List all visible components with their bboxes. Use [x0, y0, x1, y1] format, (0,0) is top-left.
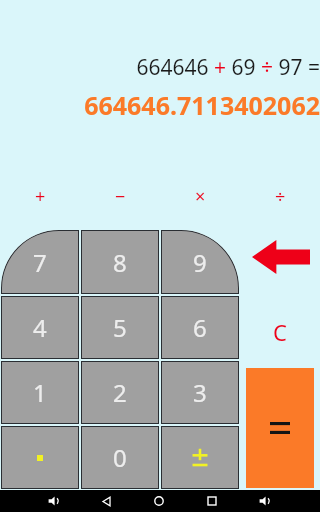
button[interactable]: Home — [146, 490, 172, 512]
staticText: C — [273, 317, 287, 347]
button[interactable]: 2 — [81, 361, 159, 424]
button[interactable]: Volume — [252, 490, 278, 512]
staticText: 664646 + 69 ÷ 97 = — [131, 53, 320, 82]
staticText: 2 — [113, 376, 127, 409]
button[interactable]: 5 — [81, 296, 159, 359]
button[interactable]: Back — [93, 490, 119, 512]
button[interactable]: 8 — [81, 230, 159, 294]
staticText: 6 — [193, 311, 207, 344]
staticText: − — [115, 184, 126, 209]
staticText: ÷ — [275, 184, 286, 209]
button[interactable]: Volume — [41, 490, 67, 512]
button[interactable]: × — [160, 180, 240, 212]
button[interactable] — [1, 426, 79, 489]
button[interactable]: Recents — [199, 490, 225, 512]
button[interactable]: + — [0, 180, 80, 212]
staticText: 5 — [113, 311, 127, 344]
button[interactable]: C — [255, 310, 305, 354]
button[interactable]: 3 — [161, 361, 239, 424]
staticText: 1 — [33, 376, 47, 409]
button[interactable] — [161, 426, 239, 489]
staticText: + — [35, 184, 46, 209]
button[interactable]: 0 — [81, 426, 159, 489]
staticText: 3 — [193, 376, 207, 409]
staticText: 7 — [33, 246, 47, 279]
button[interactable]: 1 — [1, 361, 79, 424]
button[interactable]: 4 — [1, 296, 79, 359]
button[interactable]: − — [80, 180, 160, 212]
staticText: 4 — [33, 311, 47, 344]
button[interactable] — [246, 368, 314, 488]
staticText: × — [195, 184, 206, 209]
staticText: 0 — [113, 441, 127, 474]
button[interactable]: ÷ — [240, 180, 320, 212]
staticText: 664646.7113402062 — [84, 88, 320, 122]
button[interactable]: 7 — [1, 230, 79, 294]
button[interactable]: Backspace — [250, 238, 312, 276]
button[interactable]: 6 — [161, 296, 239, 359]
button[interactable]: 9 — [161, 230, 239, 294]
staticText: 8 — [113, 246, 127, 279]
staticText: 9 — [193, 246, 207, 279]
